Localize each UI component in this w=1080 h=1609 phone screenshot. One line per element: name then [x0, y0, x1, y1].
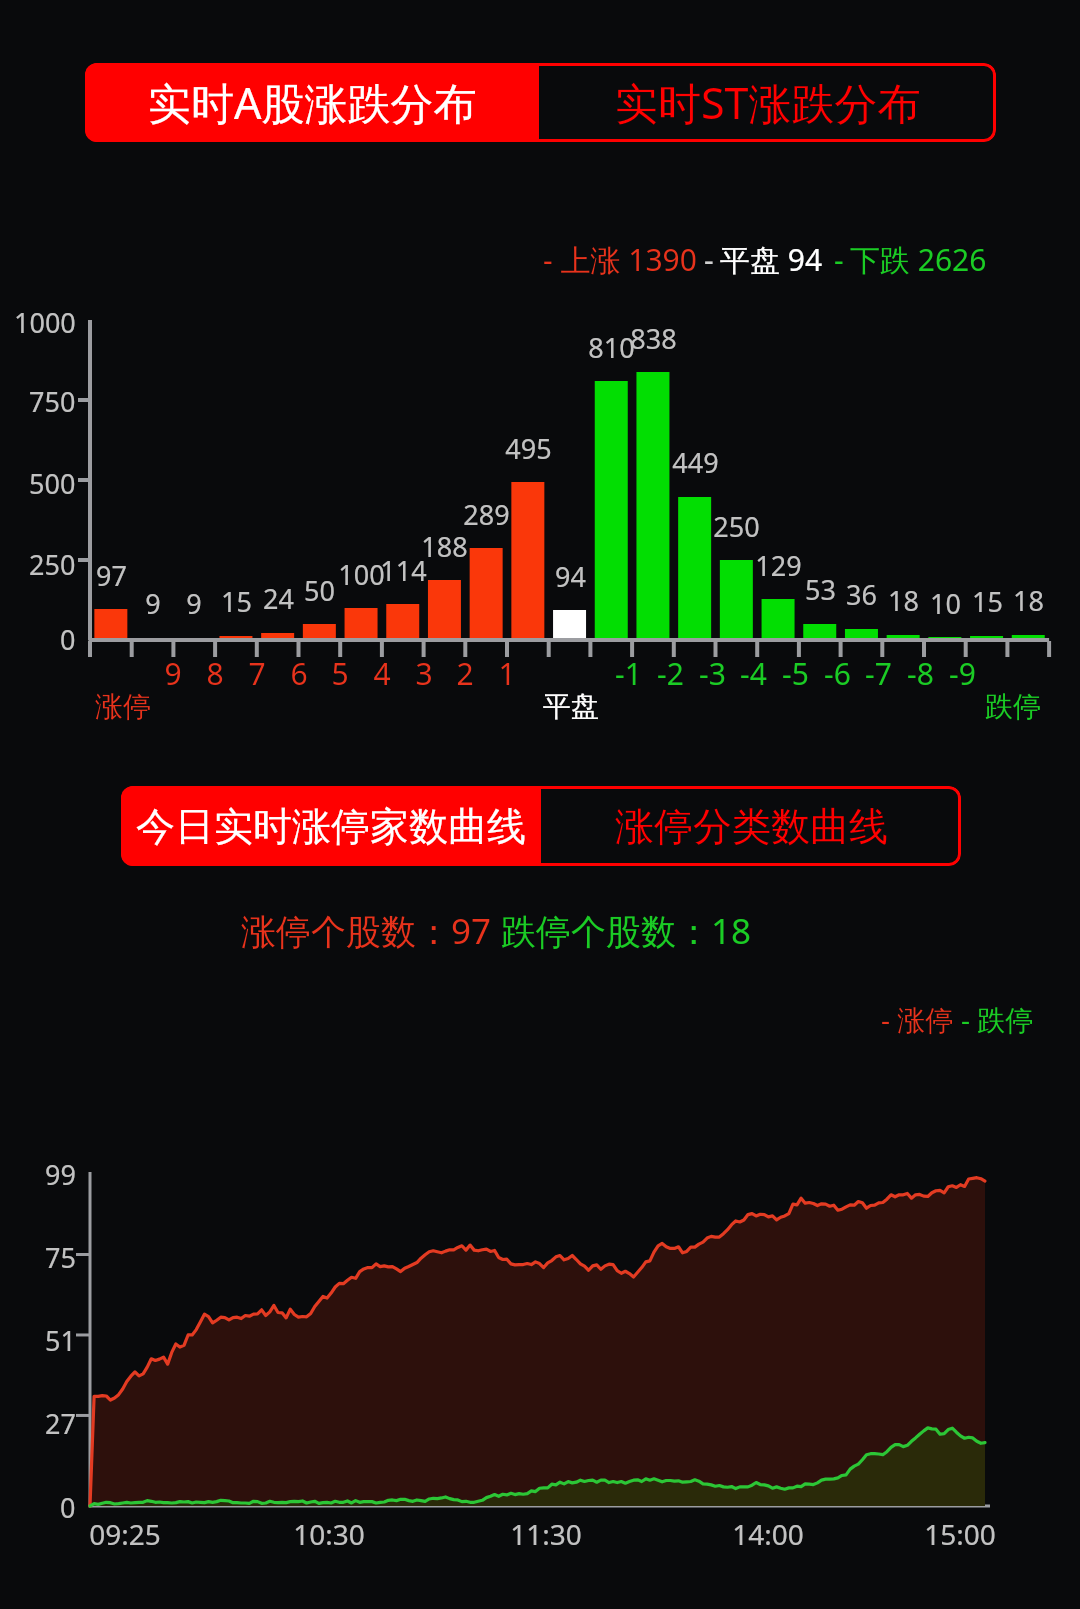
staticText: 1000	[14, 304, 76, 341]
staticText: - 涨停	[881, 1000, 961, 1038]
staticText: - 上涨 1390	[543, 239, 697, 280]
staticText: 实时A股涨跌分布	[148, 73, 477, 132]
staticText: 跌停	[985, 689, 1041, 724]
staticText: 涨停分类数曲线	[615, 802, 888, 851]
staticText: 15	[972, 583, 1003, 620]
staticText: 实时ST涨跌分布	[615, 73, 921, 132]
staticText: 51	[45, 1322, 76, 1359]
staticText: 11:30	[510, 1515, 582, 1553]
staticText: 2	[456, 653, 474, 694]
button[interactable]: 实时ST涨跌分布	[539, 63, 996, 142]
staticText: -8	[907, 653, 934, 694]
button[interactable]: 今日实时涨停家数曲线	[121, 786, 541, 866]
staticText: 平盘	[543, 689, 599, 724]
staticText: 涨停	[95, 689, 151, 724]
staticText: 188	[421, 528, 468, 565]
staticText: -	[834, 239, 844, 280]
staticText: 810	[588, 329, 635, 366]
staticText: 250	[29, 546, 76, 583]
staticText: 8	[206, 653, 224, 694]
button[interactable]: 涨停分类数曲线	[541, 786, 961, 866]
staticText: 129	[755, 547, 802, 584]
button[interactable]: 实时A股涨跌分布	[85, 63, 539, 142]
staticText: 449	[672, 444, 719, 481]
staticText: 10	[930, 585, 961, 622]
staticText: 6	[290, 653, 308, 694]
staticText: -5	[782, 653, 809, 694]
staticText: 9	[164, 653, 182, 694]
staticText: 114	[380, 552, 427, 589]
staticText: 50	[304, 572, 335, 609]
staticText: 涨停个股数：97	[241, 907, 501, 955]
staticText: 250	[713, 508, 760, 545]
staticText: 99	[45, 1156, 76, 1193]
staticText: 24	[263, 580, 294, 617]
staticText: 75	[45, 1239, 76, 1276]
staticText: 100	[338, 556, 385, 593]
staticText: 18	[888, 582, 919, 619]
staticText: 下跌 2626	[850, 239, 987, 280]
staticText: 495	[505, 430, 552, 467]
staticText: 7	[248, 653, 266, 694]
staticText: -6	[824, 653, 851, 694]
staticText: 15	[221, 583, 252, 620]
staticText: 18	[1013, 582, 1044, 619]
staticText: 53	[805, 571, 836, 608]
staticText: 0	[60, 1489, 76, 1526]
staticText: 4	[373, 653, 391, 694]
staticText: 838	[630, 320, 677, 357]
staticText: 97	[96, 557, 127, 594]
staticText: 9	[186, 585, 202, 622]
staticText: 750	[29, 383, 76, 420]
staticText: -1	[615, 653, 642, 694]
staticText: 15:00	[924, 1515, 996, 1553]
staticText: 94	[555, 558, 586, 595]
staticText: 27	[45, 1405, 76, 1442]
staticText: 9	[145, 585, 161, 622]
staticText: 09:25	[89, 1515, 161, 1553]
staticText: -3	[699, 653, 726, 694]
staticText: 36	[846, 576, 877, 613]
staticText: -7	[865, 653, 892, 694]
staticText: 500	[29, 465, 76, 502]
staticText: 5	[331, 653, 349, 694]
staticText: - 跌停	[961, 1000, 1034, 1038]
staticText: 1	[498, 653, 516, 694]
staticText: 平盘 94	[720, 239, 823, 280]
staticText: -	[704, 239, 714, 280]
staticText: -9	[949, 653, 976, 694]
staticText: 0	[60, 621, 76, 658]
staticText: 跌停个股数：18	[501, 907, 752, 955]
staticText: 3	[415, 653, 433, 694]
staticText: 10:30	[293, 1515, 365, 1553]
staticText: 14:00	[732, 1515, 804, 1553]
staticText: 289	[463, 496, 510, 533]
staticText: -4	[740, 653, 767, 694]
staticText: 今日实时涨停家数曲线	[136, 802, 526, 851]
staticText: -2	[657, 653, 684, 694]
